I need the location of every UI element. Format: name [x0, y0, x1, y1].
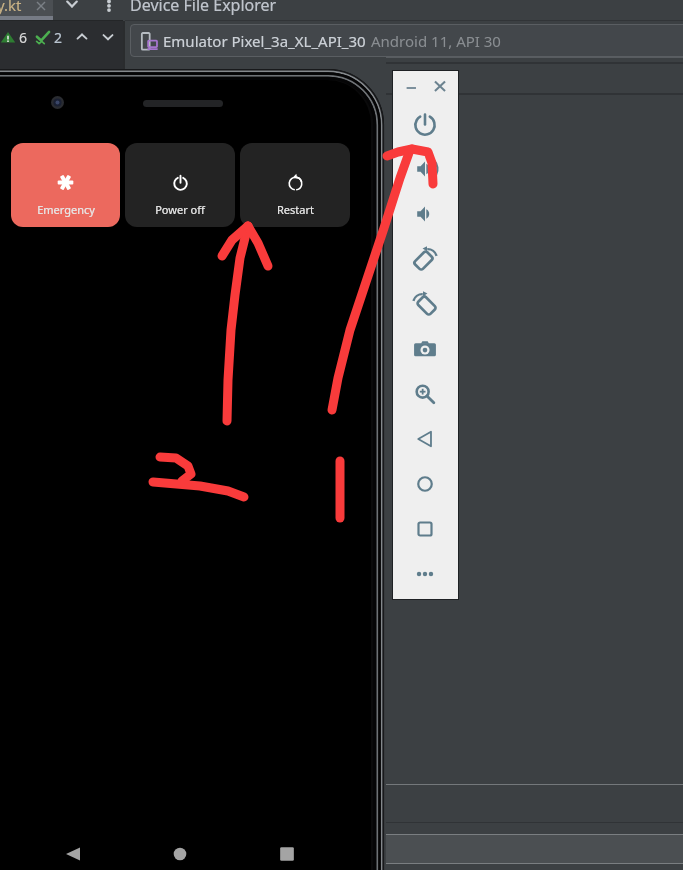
- button[interactable]: Zoom in: [412, 381, 438, 407]
- button[interactable]: Volume up: [412, 156, 438, 182]
- staticText: Restart: [277, 202, 314, 217]
- button[interactable]: Home: [171, 845, 189, 863]
- button[interactable]: More: [412, 561, 438, 587]
- button[interactable]: Recents: [278, 845, 296, 863]
- button[interactable]: Minimize: [403, 79, 421, 97]
- button[interactable]: Next: [100, 29, 116, 45]
- staticText: Device File Explorer: [130, 0, 277, 16]
- button[interactable]: Options: [101, 0, 117, 13]
- button[interactable]: Rotate right: [412, 246, 438, 272]
- button[interactable]: Home: [412, 471, 438, 497]
- button[interactable]: Power: [412, 111, 438, 137]
- button[interactable]: Restart: [240, 143, 350, 227]
- staticText: Emulator Pixel_3a_XL_API_30: [163, 31, 366, 51]
- button[interactable]: Power off: [125, 143, 235, 227]
- button[interactable]: Back: [412, 426, 438, 452]
- staticText: Emergency: [37, 202, 95, 217]
- staticText: 2: [54, 28, 63, 47]
- staticText: Android 11, API 30: [371, 31, 501, 51]
- button[interactable]: Close: [431, 77, 449, 95]
- button[interactable]: Take screenshot: [412, 336, 438, 362]
- staticText: Power off: [155, 202, 205, 217]
- staticText: y.kt: [0, 0, 22, 15]
- button[interactable]: Back: [64, 845, 82, 863]
- button[interactable]: Emulator Pixel_3a_XL_API_30: [130, 24, 683, 57]
- button[interactable]: Rotate left: [412, 291, 438, 317]
- button[interactable]: Overview: [412, 516, 438, 542]
- staticText: 6: [19, 28, 28, 47]
- button[interactable]: More tabs: [64, 0, 80, 12]
- button[interactable]: y.kt: [0, 0, 53, 21]
- button[interactable]: Previous: [74, 29, 90, 45]
- button[interactable]: Close tab: [33, 0, 49, 14]
- button[interactable]: Emergency: [11, 143, 120, 227]
- button[interactable]: Volume down: [412, 201, 438, 227]
